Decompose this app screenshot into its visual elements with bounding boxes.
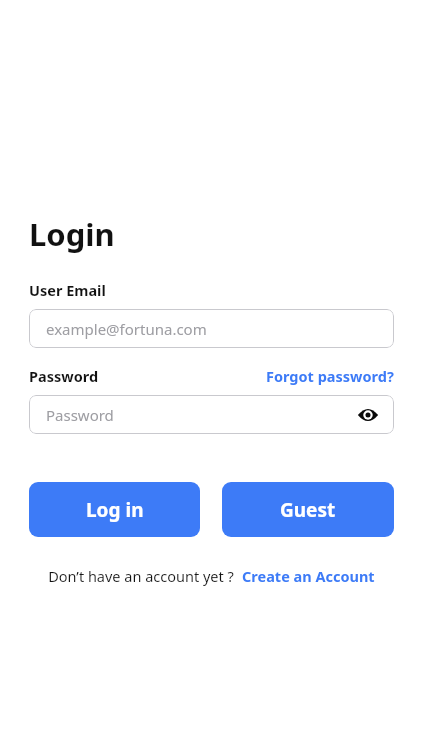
staticText: Create an Account [242, 566, 375, 586]
staticText: Password [29, 366, 99, 386]
button[interactable]: Log in [29, 482, 200, 537]
button[interactable]: Forgot password? [266, 366, 394, 386]
button[interactable]: example@fortuna.com [29, 309, 394, 348]
button[interactable]: Show password [354, 401, 382, 429]
staticText: Password [46, 405, 114, 425]
button[interactable]: Password [29, 395, 394, 434]
staticText: Guest [280, 497, 336, 523]
button[interactable]: Create an Account [242, 566, 375, 586]
staticText: Login [29, 213, 115, 255]
button[interactable]: Guest [222, 482, 394, 537]
staticText: Log in [86, 497, 144, 523]
staticText: example@fortuna.com [46, 319, 207, 339]
staticText: Don’t have an account yet ? [48, 566, 234, 586]
staticText: User Email [29, 280, 106, 300]
staticText: Forgot password? [266, 366, 394, 386]
